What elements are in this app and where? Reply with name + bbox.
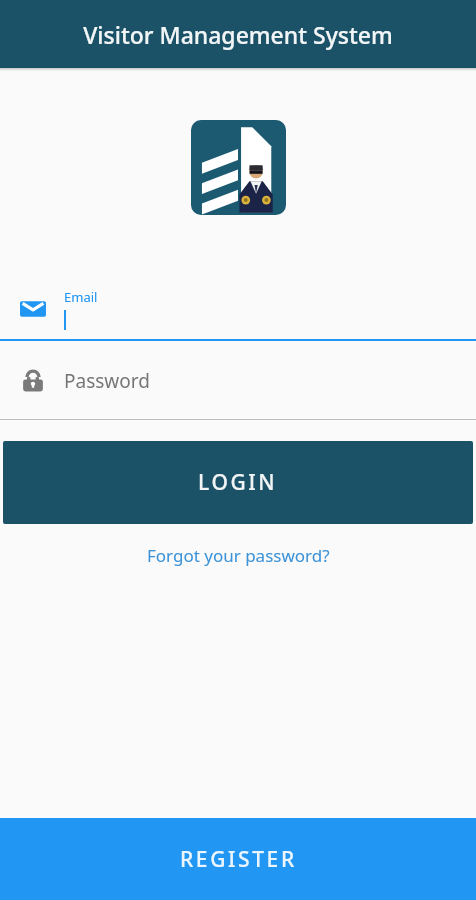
staticText: Visitor Management System (83, 19, 393, 50)
button[interactable]: Password (0, 357, 476, 405)
staticText: Password (64, 368, 150, 394)
button[interactable]: Email (0, 288, 476, 330)
button[interactable]: LOGIN (3, 441, 473, 524)
staticText: LOGIN (198, 468, 278, 497)
other: Visitor Management System logo (191, 120, 286, 215)
staticText: Email (64, 288, 98, 306)
staticText: Forgot your password? (147, 544, 330, 567)
button[interactable]: REGISTER (0, 818, 476, 900)
button[interactable]: Forgot your password? (135, 540, 342, 571)
staticText: REGISTER (180, 845, 297, 874)
